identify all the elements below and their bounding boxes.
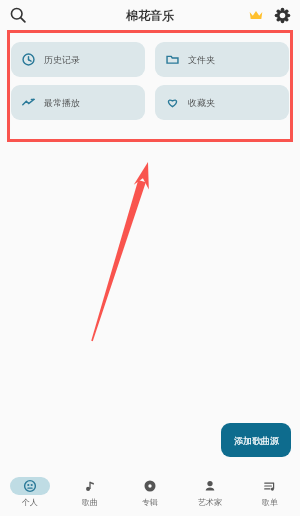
button[interactable]: 历史记录 <box>11 42 145 77</box>
button[interactable]: 歌曲 <box>60 477 120 507</box>
staticText: 最常播放 <box>44 97 80 108</box>
staticText: 艺术家 <box>198 497 222 507</box>
button[interactable]: 个人 <box>0 477 60 507</box>
button[interactable]: 专辑 <box>120 477 180 507</box>
button[interactable]: 收藏夹 <box>155 85 289 120</box>
staticText: 文件夹 <box>188 54 215 65</box>
button[interactable]: 添加歌曲源 <box>221 423 291 457</box>
button[interactable]: 艺术家 <box>180 477 240 507</box>
button[interactable]: 最常播放 <box>11 85 145 120</box>
button[interactable]: Premium <box>244 3 268 27</box>
button[interactable]: 歌单 <box>240 477 300 507</box>
staticText: 历史记录 <box>44 54 80 65</box>
button[interactable]: Settings <box>270 3 294 27</box>
staticText: 歌曲 <box>82 497 98 507</box>
staticText: 个人 <box>22 497 38 507</box>
button[interactable]: 文件夹 <box>155 42 289 77</box>
staticText: 棉花音乐 <box>126 8 174 23</box>
staticText: 歌单 <box>262 497 278 507</box>
staticText: 添加歌曲源 <box>234 435 279 446</box>
button[interactable]: Search <box>6 3 30 27</box>
staticText: 收藏夹 <box>188 97 215 108</box>
staticText: 专辑 <box>142 497 158 507</box>
